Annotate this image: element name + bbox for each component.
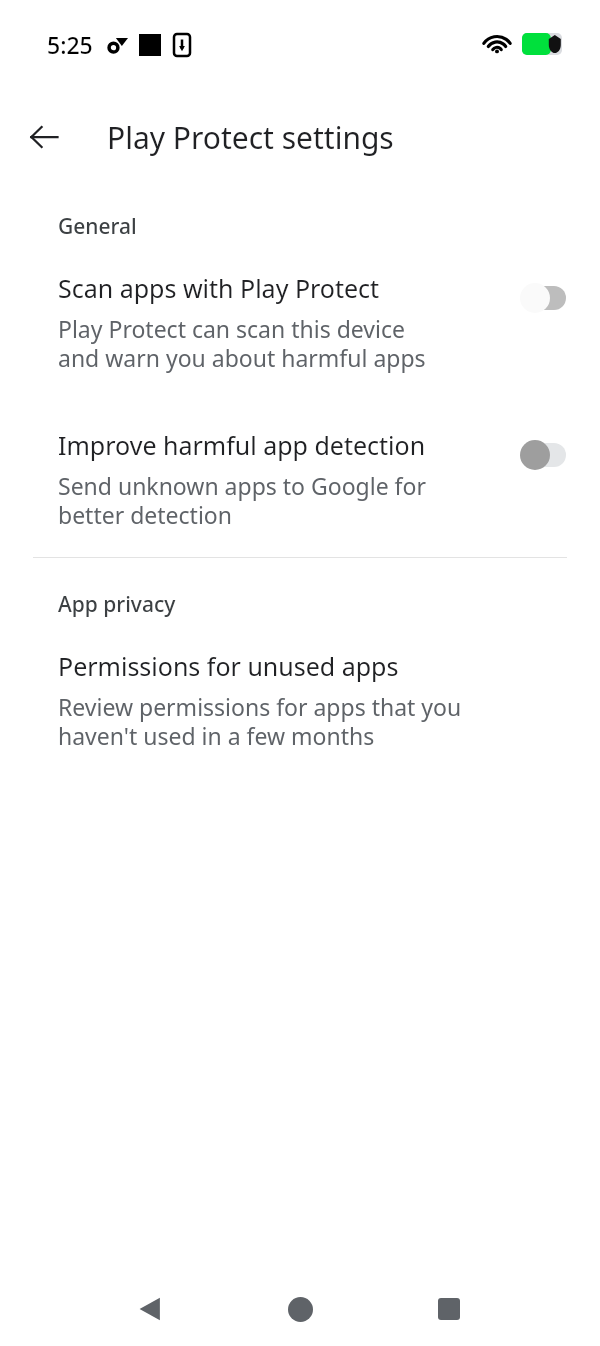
button[interactable]: Permissions for unused apps <box>0 649 600 752</box>
staticText: Scan apps with Play Protect <box>58 271 380 305</box>
button[interactable]: Toggle <box>520 283 566 313</box>
button[interactable]: Recent apps <box>417 1277 481 1341</box>
button[interactable]: Scan apps with Play Protect <box>0 271 600 374</box>
button[interactable]: Home <box>268 1277 332 1341</box>
staticText: 5:25 <box>47 29 93 60</box>
button[interactable]: Back <box>20 113 68 161</box>
button[interactable]: Toggle <box>520 440 566 470</box>
staticText: Review permissions for apps that you hav… <box>58 691 462 752</box>
staticText: Send unknown apps to Google for better d… <box>58 470 426 531</box>
staticText: Play Protect can scan this device and wa… <box>58 313 426 374</box>
staticText: Play Protect settings <box>107 117 394 158</box>
button[interactable]: Improve harmful app detection <box>0 428 600 531</box>
staticText: App privacy <box>58 590 600 619</box>
staticText: Permissions for unused apps <box>58 649 399 683</box>
button[interactable]: Back <box>118 1277 182 1341</box>
staticText: Improve harmful app detection <box>58 428 426 462</box>
staticText: General <box>58 212 600 241</box>
